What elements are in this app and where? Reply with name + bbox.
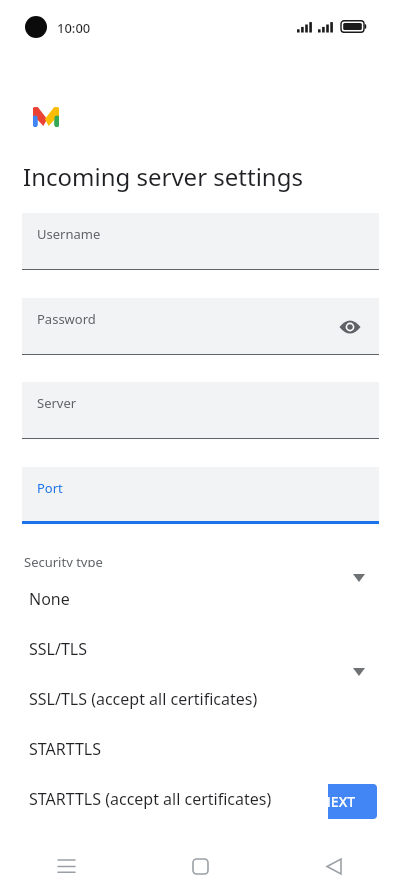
- button[interactable]: Authentication: [22, 645, 379, 707]
- button[interactable]: Show password: [333, 310, 367, 344]
- button[interactable]: SSL/TLS: [18, 624, 328, 674]
- button[interactable]: Security type: [22, 551, 379, 613]
- button[interactable]: SSL/TLS (accept all certificates): [18, 674, 328, 724]
- staticText: STARTTLS: [29, 738, 102, 760]
- staticText: Port: [37, 479, 63, 497]
- button[interactable]: Password: [22, 298, 379, 355]
- button[interactable]: Port: [22, 467, 379, 524]
- staticText: Password: [37, 310, 96, 328]
- staticText: 10:00: [57, 19, 91, 37]
- button[interactable]: Back: [267, 840, 401, 892]
- button[interactable]: STARTTLS (accept all certificates): [18, 774, 328, 824]
- button[interactable]: Recent apps: [0, 840, 133, 892]
- staticText: Username: [37, 225, 101, 243]
- staticText: Authentication: [24, 647, 114, 665]
- staticText: STARTTLS (accept all certificates): [29, 788, 272, 810]
- staticText: SSL/TLS: [29, 638, 87, 660]
- staticText: Server: [37, 394, 77, 412]
- button[interactable]: Home: [133, 840, 267, 892]
- staticText: SSL/TLS (accept all certificates): [29, 688, 258, 710]
- staticText: Security type: [24, 553, 103, 571]
- staticText: None: [29, 588, 70, 610]
- staticText: NEXT: [320, 792, 356, 811]
- staticText: Incoming server settings: [23, 160, 303, 193]
- button[interactable]: STARTTLS: [18, 724, 328, 774]
- button[interactable]: Username: [22, 213, 379, 270]
- button[interactable]: NEXT: [299, 784, 377, 819]
- button[interactable]: None: [18, 574, 328, 624]
- button[interactable]: Server: [22, 382, 379, 439]
